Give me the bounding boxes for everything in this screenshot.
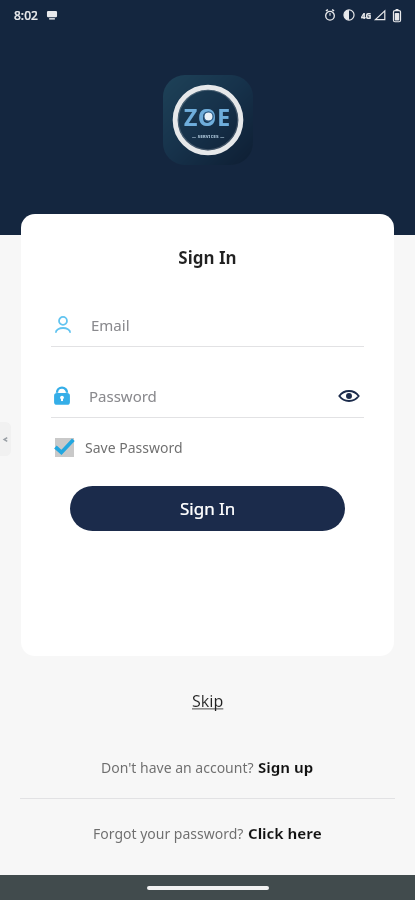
button[interactable]: Sign In: [70, 486, 345, 531]
staticText: Password: [89, 386, 334, 406]
button[interactable]: Save Password: [51, 434, 183, 460]
button[interactable]: Don't have an account?: [0, 753, 415, 781]
staticText: ZOE: [184, 101, 232, 132]
button[interactable]: Email: [51, 304, 364, 347]
staticText: Sign In: [180, 497, 236, 520]
staticText: — SERVICES —: [192, 134, 225, 139]
staticText: Don't have an account?: [101, 758, 258, 777]
button[interactable]: Password: [51, 375, 364, 418]
staticText: Sign In: [21, 246, 394, 269]
button[interactable]: Show password: [334, 381, 364, 411]
staticText: 4G: [361, 10, 372, 21]
staticText: Skip: [192, 690, 224, 712]
other: Back: [0, 422, 11, 456]
button[interactable]: Skip: [178, 686, 238, 716]
staticText: Sign up: [258, 757, 314, 777]
other: ZOE Services logo: [163, 75, 253, 165]
staticText: Save Password: [85, 438, 183, 457]
button[interactable]: Forgot your password?: [0, 819, 415, 847]
staticText: Email: [91, 315, 130, 335]
staticText: Forgot your password?: [93, 824, 248, 843]
staticText: Click here: [248, 823, 322, 843]
staticText: 8:02: [14, 7, 38, 23]
